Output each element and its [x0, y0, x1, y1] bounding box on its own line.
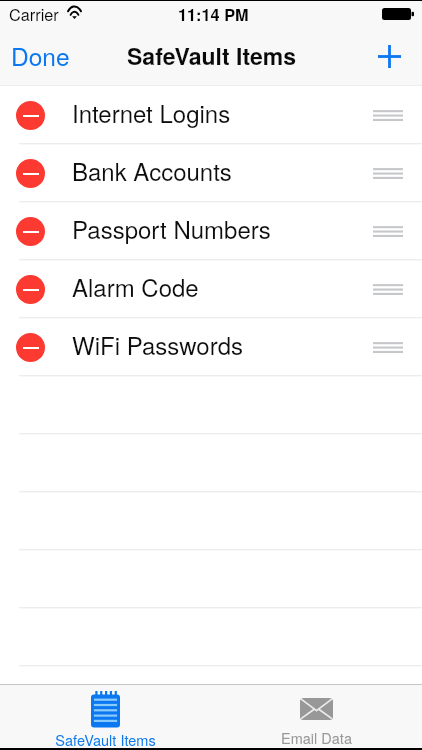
staticText: SafeVault Items — [127, 39, 296, 72]
other: Reorder — [373, 167, 403, 179]
other: Reorder — [373, 283, 403, 295]
button[interactable]: Delete Passport Numbers — [16, 217, 45, 246]
button[interactable]: Add item — [362, 36, 422, 79]
button[interactable]: Delete Passport Numbers — [0, 202, 422, 260]
staticText: Carrier — [9, 2, 59, 25]
staticText: SafeVault Items — [55, 729, 156, 750]
button[interactable]: Delete Bank Accounts — [0, 144, 422, 202]
staticText: Email Data — [281, 727, 352, 748]
staticText: Internet Logins — [72, 95, 231, 129]
button[interactable]: Email Data — [211, 684, 422, 750]
other: Reorder — [373, 109, 403, 121]
button[interactable]: Delete WiFi Passwords — [16, 333, 45, 362]
other: Email Data — [300, 698, 333, 720]
button[interactable]: Delete WiFi Passwords — [0, 318, 422, 376]
other: Reorder — [373, 225, 403, 237]
staticText: Alarm Code — [72, 269, 199, 303]
button[interactable]: Delete Alarm Code — [0, 260, 422, 318]
button[interactable]: Delete Alarm Code — [16, 275, 45, 304]
staticText: Done — [11, 38, 70, 73]
button[interactable]: Delete Internet Logins — [0, 86, 422, 144]
button[interactable]: Done — [0, 34, 82, 81]
button[interactable]: Delete Bank Accounts — [16, 159, 45, 188]
staticText: WiFi Passwords — [72, 327, 244, 361]
button[interactable]: SafeVault Items — [0, 684, 211, 750]
staticText: Passport Numbers — [72, 211, 271, 245]
staticText: 11:14 PM — [178, 3, 249, 26]
other: Reorder — [373, 341, 403, 353]
button[interactable]: Delete Internet Logins — [16, 101, 45, 130]
staticText: Bank Accounts — [72, 153, 232, 187]
